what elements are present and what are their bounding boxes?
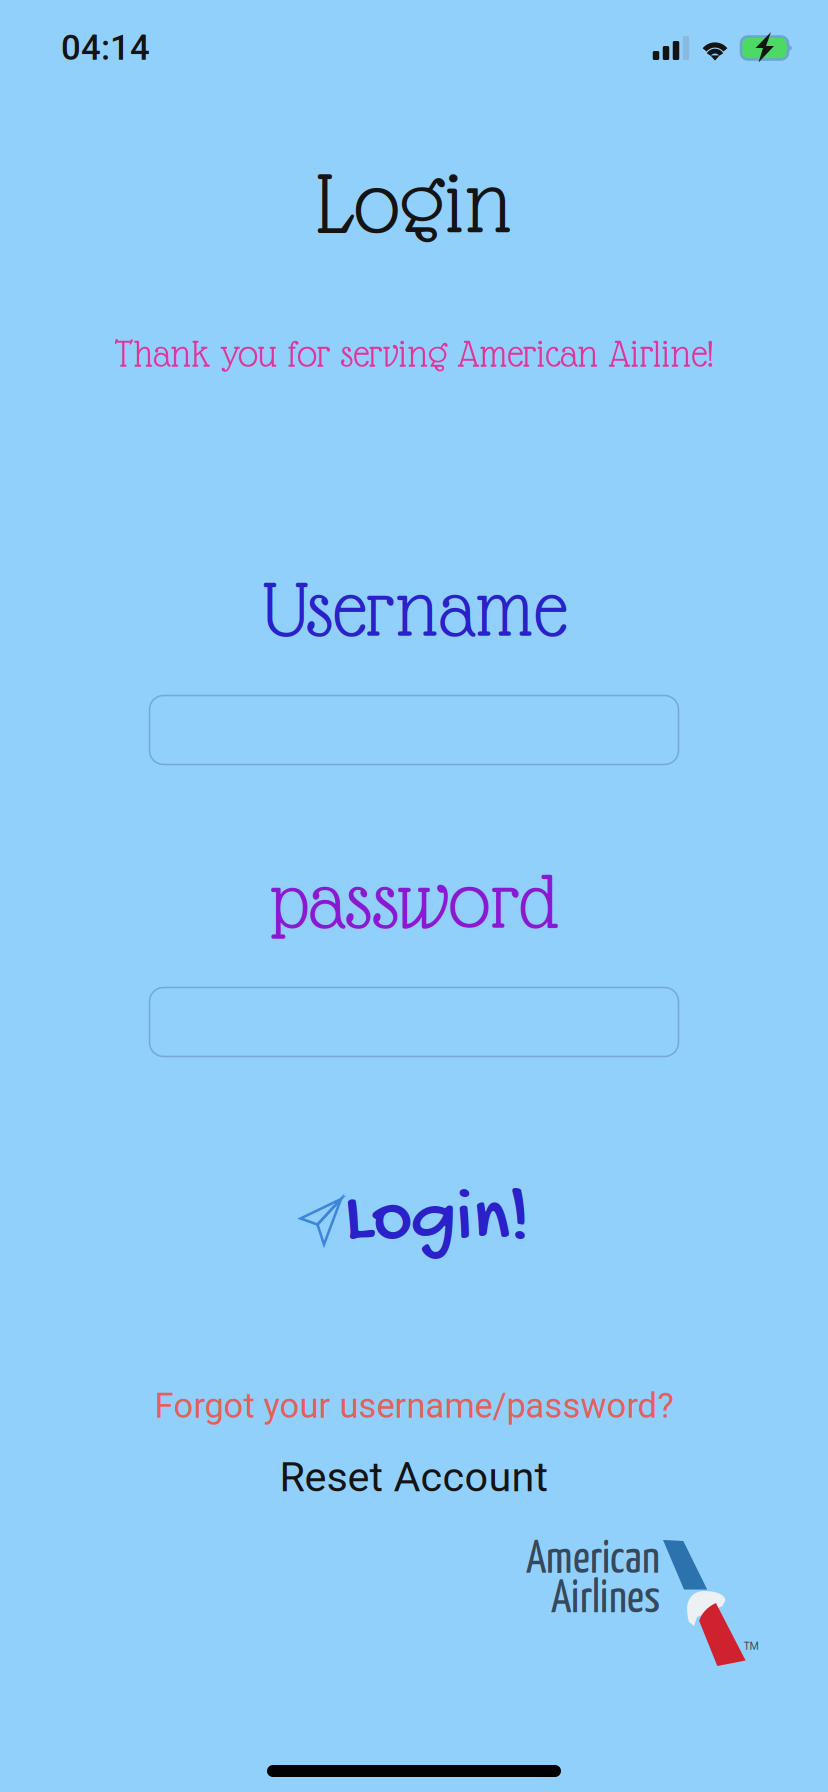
staticText: password: [269, 857, 559, 944]
staticText: Username: [262, 565, 566, 652]
staticText: 04:14: [61, 28, 150, 68]
staticText: Forgot your username/password?: [154, 1386, 673, 1426]
staticText: TM: [743, 1640, 758, 1652]
staticText: Login: [315, 155, 512, 251]
button[interactable]: Forgot your username/password?: [154, 1386, 673, 1426]
button[interactable]: Login!: [298, 1176, 530, 1268]
staticText: American: [526, 1538, 660, 1582]
staticText: Airlines: [551, 1578, 660, 1622]
button[interactable]: Reset Account: [279, 1453, 548, 1501]
staticText: Reset Account: [279, 1453, 548, 1501]
staticText: Login!: [344, 1176, 530, 1268]
staticText: Thank you for serving American Airline!: [114, 333, 713, 375]
